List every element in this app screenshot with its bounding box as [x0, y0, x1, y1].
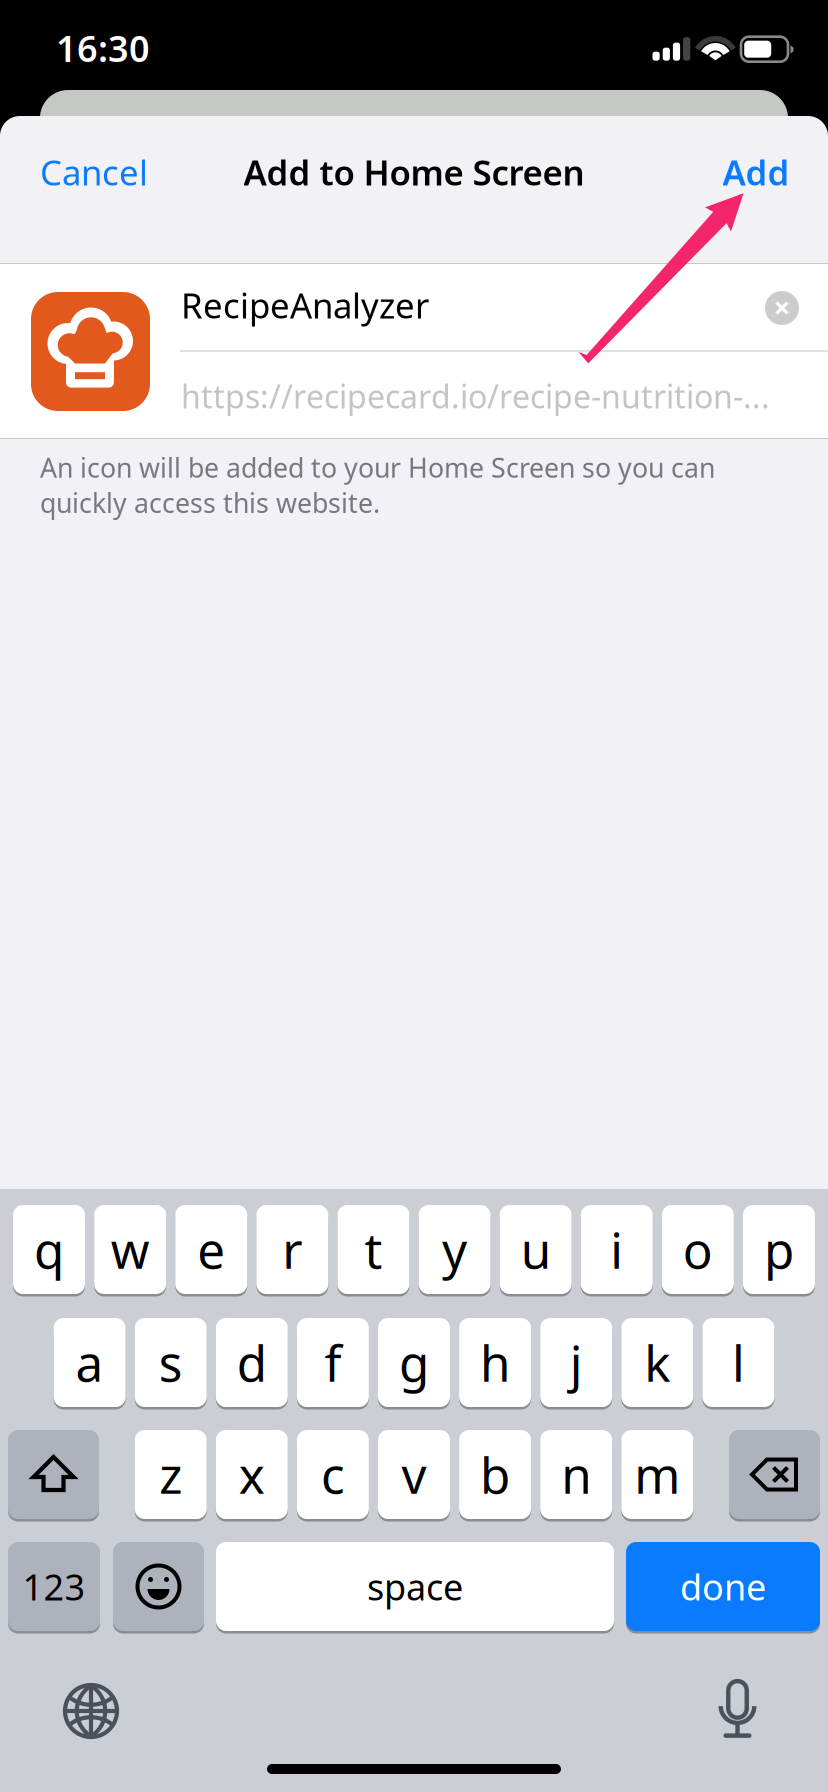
staticText: h	[480, 1330, 510, 1395]
button[interactable]: i	[581, 1203, 653, 1295]
button[interactable]: Next keyboard	[43, 1663, 139, 1759]
staticText: q	[34, 1217, 64, 1282]
staticText: k	[644, 1330, 670, 1395]
staticText: c	[321, 1442, 345, 1507]
staticText: Add to Home Screen	[243, 149, 584, 195]
staticText: j	[570, 1330, 583, 1395]
staticText: v	[401, 1442, 426, 1507]
button[interactable]: y	[419, 1203, 491, 1295]
staticText: n	[561, 1442, 591, 1507]
staticText: r	[282, 1217, 302, 1282]
staticText: https://recipecard.io/recipe-nutrition-.…	[181, 375, 770, 417]
staticText: d	[237, 1330, 267, 1395]
staticText: i	[610, 1217, 623, 1282]
button[interactable]: q	[13, 1203, 85, 1295]
staticText: u	[521, 1217, 551, 1282]
button[interactable]: done	[626, 1540, 820, 1632]
staticText: b	[480, 1442, 510, 1507]
button[interactable]: Clear text	[747, 273, 817, 343]
button[interactable]: z	[135, 1428, 207, 1520]
staticText: t	[364, 1217, 382, 1282]
button[interactable]: f	[297, 1316, 369, 1408]
staticText: y	[442, 1217, 467, 1282]
button[interactable]	[113, 1540, 204, 1632]
button[interactable]: 123	[8, 1540, 100, 1632]
button[interactable]: w	[94, 1203, 166, 1295]
staticText: w	[111, 1217, 150, 1282]
button[interactable]: e	[175, 1203, 247, 1295]
staticText: s	[159, 1330, 183, 1395]
button[interactable]: m	[621, 1428, 693, 1520]
staticText: RecipeAnalyzer	[181, 282, 429, 328]
staticText: o	[683, 1217, 713, 1282]
button[interactable]: v	[378, 1428, 450, 1520]
button[interactable]	[8, 1428, 99, 1520]
staticText: x	[239, 1442, 265, 1507]
button[interactable]: c	[297, 1428, 369, 1520]
button[interactable]: h	[459, 1316, 531, 1408]
button[interactable]: g	[378, 1316, 450, 1408]
staticText: p	[764, 1217, 794, 1282]
button[interactable]: Add	[708, 127, 803, 217]
button[interactable]: k	[621, 1316, 693, 1408]
button[interactable]: o	[662, 1203, 734, 1295]
button[interactable]: space	[216, 1540, 614, 1632]
button[interactable]: b	[459, 1428, 531, 1520]
staticText: Cancel	[40, 149, 148, 195]
staticText: f	[324, 1330, 341, 1395]
button[interactable]: a	[54, 1316, 126, 1408]
button[interactable]: t	[337, 1203, 409, 1295]
staticText: 123	[22, 1563, 85, 1610]
staticText: z	[159, 1442, 182, 1507]
button[interactable]: j	[540, 1316, 612, 1408]
button[interactable]: Cancel	[26, 127, 162, 217]
button[interactable]	[729, 1428, 820, 1520]
staticText: Add	[722, 149, 789, 195]
staticText: g	[399, 1330, 429, 1395]
staticText: a	[76, 1330, 104, 1395]
button[interactable]: d	[216, 1316, 288, 1408]
button[interactable]: u	[500, 1203, 572, 1295]
staticText: space	[367, 1563, 463, 1610]
button[interactable]: l	[702, 1316, 774, 1408]
button[interactable]: r	[256, 1203, 328, 1295]
staticText: 16:30	[56, 24, 150, 72]
staticText: l	[732, 1330, 745, 1395]
staticText: An icon will be added to your Home Scree…	[40, 450, 715, 520]
button[interactable]: x	[216, 1428, 288, 1520]
button[interactable]: n	[540, 1428, 612, 1520]
button[interactable]: Dictation	[689, 1662, 785, 1758]
staticText: done	[680, 1563, 766, 1610]
staticText: e	[197, 1217, 225, 1282]
staticText: m	[634, 1442, 680, 1507]
button[interactable]: p	[743, 1203, 815, 1295]
button[interactable]: s	[135, 1316, 207, 1408]
